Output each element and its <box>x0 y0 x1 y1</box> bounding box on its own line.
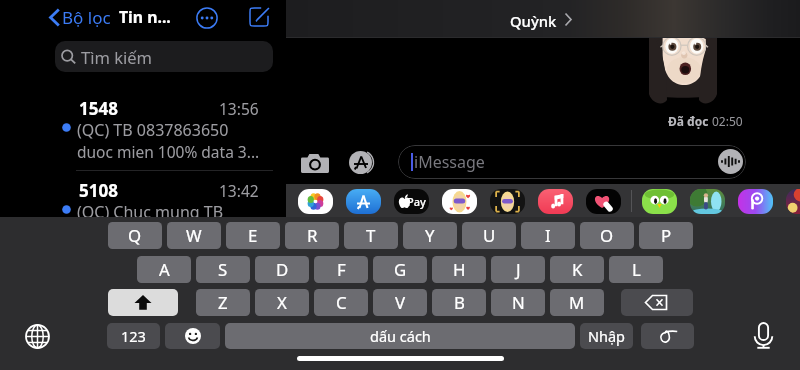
button[interactable]: N <box>491 289 545 316</box>
staticText: D <box>276 258 289 281</box>
button[interactable]: Bộ lọc <box>62 6 111 29</box>
staticText: X <box>277 291 287 314</box>
button[interactable]: DUOLINGO <box>642 189 677 214</box>
button[interactable]: MARVEL <box>786 189 800 214</box>
staticText: Tìm kiếm <box>81 46 152 68</box>
button[interactable]: 5108 <box>0 179 286 259</box>
button[interactable]: 123 <box>107 323 160 349</box>
button[interactable]: Record audio message <box>718 149 743 174</box>
button[interactable]: Back <box>44 4 64 30</box>
button[interactable]: W <box>167 222 221 249</box>
button[interactable]: P <box>639 222 693 249</box>
button[interactable]: J <box>491 256 545 283</box>
button[interactable]: New message <box>248 6 270 28</box>
button[interactable]: X <box>255 289 309 316</box>
staticText: Tin n... <box>119 6 171 28</box>
staticText: F <box>337 258 346 281</box>
staticText: W <box>186 224 202 247</box>
button[interactable]: O <box>580 222 634 249</box>
button[interactable]: E <box>226 222 280 249</box>
staticText: dấu cách <box>370 326 431 346</box>
staticText: O <box>600 224 614 247</box>
button[interactable]: ANIMOJI <box>490 189 525 214</box>
staticText: P <box>661 224 672 247</box>
staticText: 5108 <box>79 179 118 202</box>
staticText: S <box>218 258 228 281</box>
button[interactable]: PHOTOS <box>298 189 333 214</box>
button[interactable]: V <box>373 289 427 316</box>
staticText: (QC) TB 0837863650 <box>77 119 229 141</box>
staticText: M <box>569 291 585 314</box>
button[interactable]: FITNESS <box>586 189 621 214</box>
button[interactable]: Emoji <box>165 323 220 349</box>
button[interactable]: M <box>550 289 604 316</box>
button[interactable]: App Store <box>349 150 374 175</box>
button[interactable]: Camera <box>300 150 330 174</box>
button[interactable]: H <box>432 256 486 283</box>
button[interactable]: L <box>609 256 663 283</box>
button[interactable]: iMessage <box>398 145 746 179</box>
staticText: K <box>572 258 583 281</box>
staticText: Z <box>218 291 228 314</box>
staticText: U <box>483 224 496 247</box>
staticText: E <box>248 224 258 247</box>
button[interactable]: Shift <box>108 289 178 316</box>
staticText: T <box>366 224 376 247</box>
button[interactable]: MUSIC <box>538 189 573 214</box>
button[interactable]: Z <box>196 289 250 316</box>
staticText: Y <box>425 224 435 247</box>
staticText: Pay <box>407 194 426 209</box>
button[interactable]: Backspace <box>621 289 693 316</box>
button[interactable]: S <box>196 256 250 283</box>
button[interactable]: GAME <box>690 189 725 214</box>
staticText: Q <box>128 224 142 247</box>
button[interactable]: Quỳnk <box>510 11 557 31</box>
button[interactable]: Y <box>403 222 457 249</box>
button[interactable]: APPSTORE <box>346 189 381 214</box>
button[interactable]: Change keyboard <box>25 324 50 349</box>
button[interactable]: B <box>432 289 486 316</box>
staticText: R <box>307 224 318 247</box>
button[interactable]: U <box>462 222 516 249</box>
button[interactable]: T <box>344 222 398 249</box>
staticText: 123 <box>121 326 146 346</box>
button[interactable]: More options <box>196 7 218 29</box>
button[interactable]: Q <box>108 222 162 249</box>
staticText: (QC) Chuc mung TB <box>77 201 224 223</box>
staticText: Quỳnk <box>510 11 557 31</box>
staticText: I <box>545 224 551 247</box>
staticText: 1548 <box>79 97 118 120</box>
button[interactable]: G <box>373 256 427 283</box>
staticText: B <box>454 291 465 314</box>
staticText: V <box>395 291 406 314</box>
staticText: Đã đọc <box>668 113 709 129</box>
staticText: duoc mien 100% data 3... <box>77 141 260 162</box>
button[interactable]: F <box>314 256 368 283</box>
button[interactable]: Nhập <box>580 323 633 349</box>
staticText: A <box>159 258 170 281</box>
button[interactable]: C <box>314 289 368 316</box>
button[interactable]: MEMOJI <box>442 189 477 214</box>
button[interactable]: APPLEPAY <box>394 189 429 214</box>
button[interactable]: I <box>521 222 575 249</box>
button[interactable]: Handwriting <box>641 323 694 349</box>
button[interactable]: PICSART <box>738 189 773 214</box>
staticText: H <box>453 258 466 281</box>
button[interactable]: A <box>137 256 191 283</box>
staticText: N <box>512 291 525 314</box>
staticText: 13:42 <box>219 180 259 201</box>
button[interactable]: D <box>255 256 309 283</box>
button[interactable]: dấu cách <box>225 323 575 349</box>
staticText: Nhập <box>588 326 626 346</box>
staticText: 02:50 <box>712 113 743 129</box>
staticText: iMessage <box>414 151 485 173</box>
staticText: L <box>632 258 641 281</box>
staticText: C <box>336 291 347 314</box>
button[interactable]: Dictate <box>751 322 776 350</box>
staticText: J <box>516 258 521 281</box>
button[interactable]: K <box>550 256 604 283</box>
button[interactable]: 1548 <box>0 97 286 177</box>
staticText: 13:56 <box>219 98 259 119</box>
button[interactable]: Tìm kiếm <box>55 41 273 72</box>
button[interactable]: R <box>285 222 339 249</box>
